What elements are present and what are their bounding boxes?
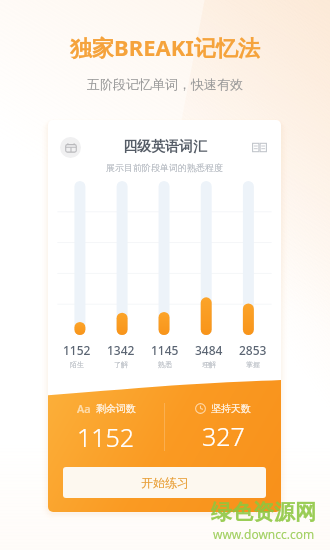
staticText: 陌生 <box>70 360 84 369</box>
staticText: 坚持天数 <box>211 402 251 415</box>
staticText: 独家BREAKI记忆法 <box>70 32 260 62</box>
staticText: 1152 <box>77 420 135 454</box>
staticText: 开始练习 <box>141 475 189 490</box>
staticText: 1145 <box>151 342 179 358</box>
staticText: 掌握 <box>246 360 260 369</box>
button[interactable]: Word book <box>60 137 81 158</box>
staticText: 理解 <box>202 360 216 369</box>
staticText: 熟悉 <box>158 360 172 369</box>
staticText: 1152 <box>63 342 91 358</box>
staticText: 五阶段记忆单词，快速有效 <box>87 76 243 92</box>
staticText: 绿色资源网 <box>211 499 316 525</box>
staticText: Aa <box>77 401 91 416</box>
staticText: 了解 <box>114 360 128 369</box>
button[interactable]: Switch book <box>248 136 270 158</box>
staticText: 展示目前阶段单词的熟悉程度 <box>106 162 223 173</box>
staticText: 四级英语词汇 <box>123 138 207 156</box>
button[interactable]: 开始练习 <box>63 467 266 498</box>
staticText: 剩余词数 <box>96 402 136 415</box>
staticText: 2853 <box>239 342 267 358</box>
staticText: 1342 <box>107 342 135 358</box>
staticText: 3484 <box>195 342 223 358</box>
staticText: www.downcc.com <box>213 526 315 542</box>
staticText: 327 <box>202 419 245 453</box>
